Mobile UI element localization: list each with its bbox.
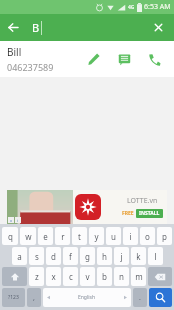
- staticText: h: [102, 251, 107, 262]
- button[interactable]: h: [97, 247, 112, 265]
- button[interactable]: z: [29, 267, 44, 286]
- button[interactable]: v: [80, 267, 95, 286]
- button[interactable]: Backspace: [148, 267, 172, 286]
- button[interactable]: c: [63, 267, 78, 286]
- staticText: English: [78, 294, 96, 301]
- staticText: a: [17, 251, 22, 262]
- staticText: e: [43, 231, 48, 242]
- staticText: p: [162, 231, 167, 242]
- button[interactable]: f: [63, 247, 78, 265]
- staticText: LOTTE.vn: [127, 196, 158, 206]
- staticText: B: [32, 20, 40, 35]
- staticText: z: [35, 271, 39, 282]
- staticText: i: [129, 231, 132, 242]
- button[interactable]: i: [123, 227, 138, 245]
- staticText: d: [51, 251, 56, 262]
- staticText: l: [154, 251, 157, 262]
- button[interactable]: x: [46, 267, 61, 286]
- button[interactable]: Call: [142, 47, 166, 71]
- staticText: ,: [33, 293, 35, 303]
- staticText: i: [17, 218, 19, 223]
- button[interactable]: y: [89, 227, 104, 245]
- button[interactable]: j: [114, 247, 129, 265]
- button[interactable]: w: [20, 227, 36, 245]
- staticText: f: [69, 251, 72, 262]
- button[interactable]: x: [7, 190, 167, 224]
- button[interactable]: g: [80, 247, 95, 265]
- staticText: j: [120, 251, 123, 262]
- button[interactable]: r: [55, 227, 70, 245]
- staticText: s: [35, 251, 39, 262]
- staticText: w: [25, 231, 32, 242]
- button[interactable]: a: [12, 247, 27, 265]
- button[interactable]: n: [114, 267, 129, 286]
- staticText: g: [85, 251, 90, 262]
- button[interactable]: d: [46, 247, 61, 265]
- button[interactable]: u: [106, 227, 121, 245]
- staticText: .: [139, 293, 141, 303]
- button[interactable]: m: [131, 267, 146, 286]
- button[interactable]: Message: [112, 47, 136, 71]
- staticText: o: [145, 231, 150, 242]
- staticText: INSTALL: [139, 210, 160, 217]
- staticText: ?123: [8, 294, 19, 301]
- button[interactable]: .: [133, 288, 147, 307]
- staticText: 4G: [128, 4, 135, 11]
- button[interactable]: q: [2, 227, 18, 245]
- staticText: x: [10, 218, 13, 223]
- button[interactable]: s: [29, 247, 44, 265]
- staticText: v: [85, 271, 90, 282]
- button[interactable]: English: [43, 288, 131, 307]
- staticText: FREE: [122, 210, 134, 217]
- staticText: k: [136, 251, 141, 262]
- staticText: 6:53 AM: [144, 2, 171, 12]
- staticText: c: [69, 271, 73, 282]
- button[interactable]: ,: [27, 288, 41, 307]
- staticText: t: [78, 231, 81, 242]
- button[interactable]: k: [131, 247, 146, 265]
- button[interactable]: t: [72, 227, 87, 245]
- button[interactable]: Clear: [145, 14, 172, 41]
- button[interactable]: Shift: [2, 267, 27, 286]
- button[interactable]: p: [157, 227, 172, 245]
- button[interactable]: b: [97, 267, 112, 286]
- button[interactable]: Bill: [0, 41, 174, 77]
- staticText: 046237589: [7, 61, 54, 73]
- button[interactable]: l: [148, 247, 163, 265]
- button[interactable]: Search: [149, 288, 172, 307]
- button[interactable]: INSTALL: [139, 210, 160, 217]
- staticText: Bill: [7, 45, 22, 59]
- staticText: x: [51, 271, 56, 282]
- staticText: m: [135, 271, 143, 282]
- staticText: q: [8, 231, 13, 242]
- button[interactable]: Back: [0, 14, 27, 41]
- staticText: b: [102, 271, 107, 282]
- button[interactable]: Edit: [82, 47, 106, 71]
- staticText: y: [94, 231, 99, 242]
- button[interactable]: Symbols: [2, 288, 25, 307]
- staticText: r: [61, 231, 65, 242]
- staticText: u: [111, 231, 116, 242]
- button[interactable]: e: [38, 227, 53, 245]
- staticText: n: [119, 271, 124, 282]
- button[interactable]: o: [140, 227, 155, 245]
